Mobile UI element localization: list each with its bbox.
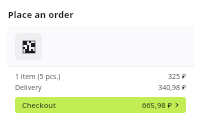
button[interactable]: Product image (15, 33, 42, 60)
staticText: 665,98 ₽ (142, 100, 172, 110)
staticText: 325 ₽ (168, 72, 186, 82)
button[interactable]: Product image (7, 26, 194, 66)
staticText: 340,98 ₽ (158, 83, 186, 93)
staticText: Place an order (8, 8, 74, 20)
staticText: 1 item (5 pcs.) (15, 72, 61, 82)
button[interactable]: 1 item (5 pcs.) (7, 71, 194, 82)
staticText: Checkout (22, 100, 56, 110)
button[interactable]: Checkout (15, 97, 186, 113)
button[interactable]: Delivery (7, 82, 194, 93)
staticText: Delivery (15, 83, 42, 93)
